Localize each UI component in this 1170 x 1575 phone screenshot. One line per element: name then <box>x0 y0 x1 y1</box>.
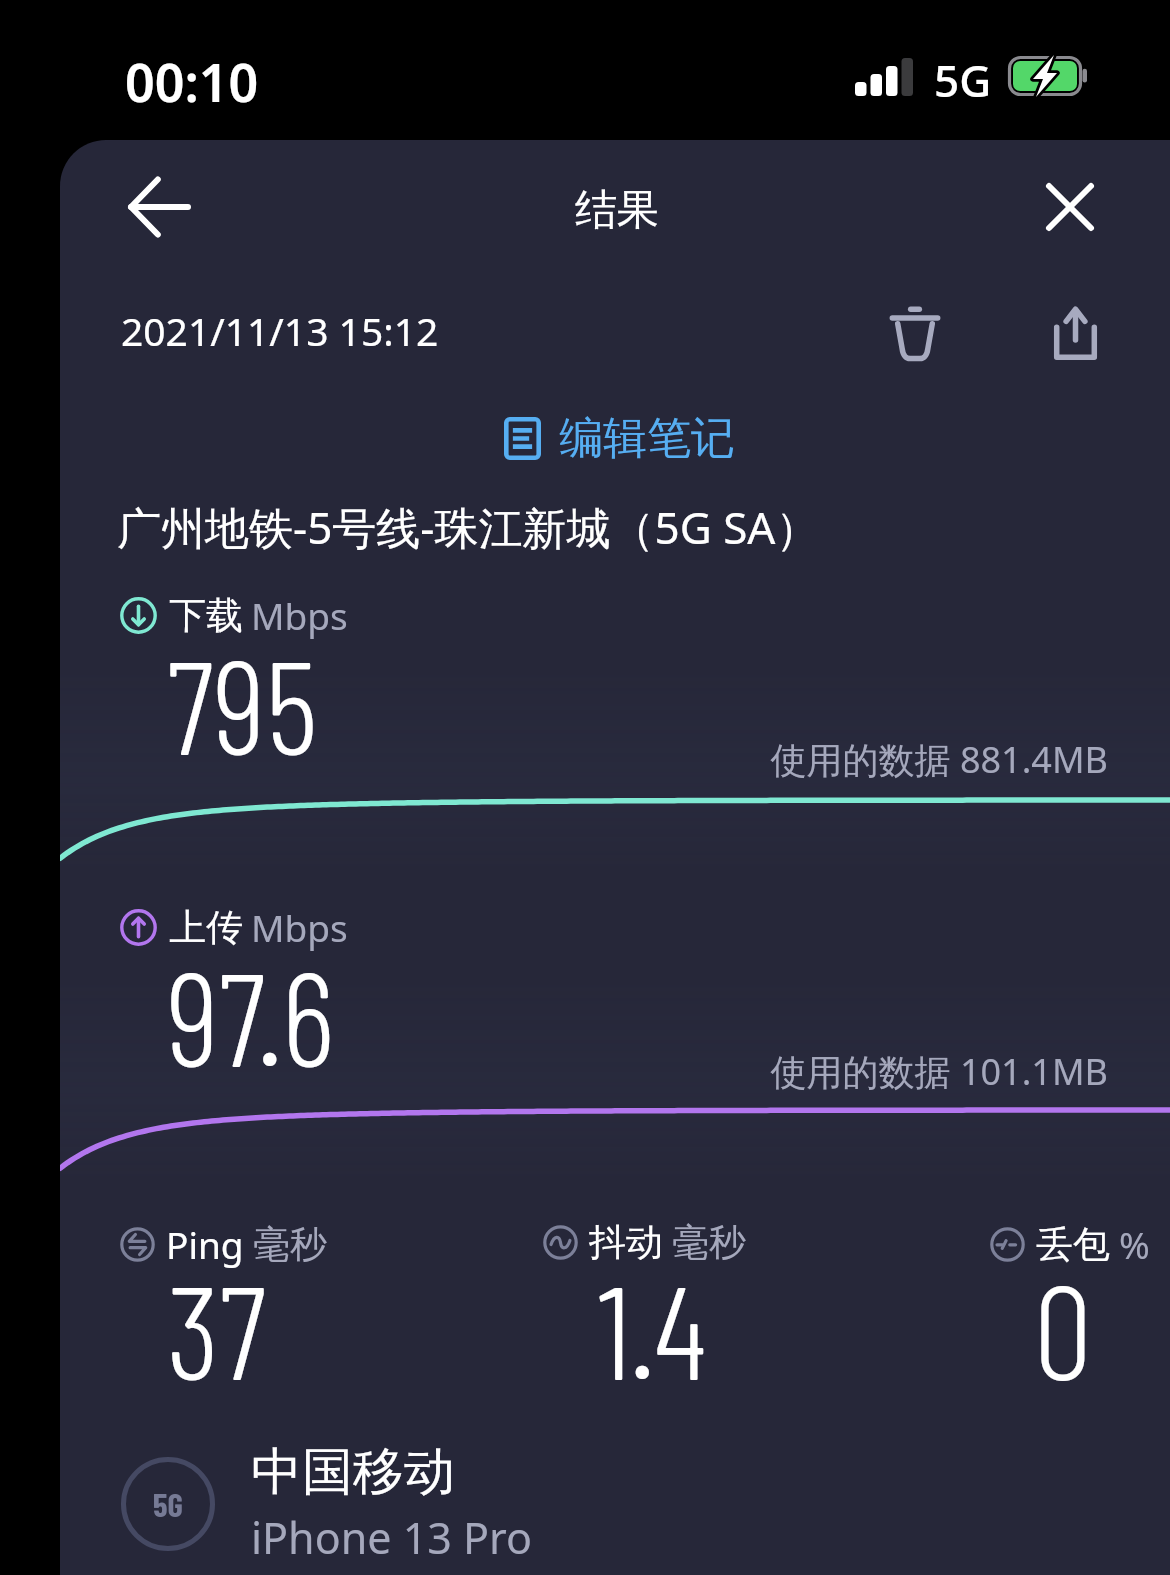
staticText: % <box>1119 1219 1150 1269</box>
staticText: 795 <box>167 624 318 781</box>
staticText: Ping <box>166 1219 244 1269</box>
button[interactable]: 编辑笔记 <box>494 401 745 476</box>
staticText: 37 <box>167 1249 267 1406</box>
staticText: 00:10 <box>125 46 259 117</box>
staticText: 抖动 <box>589 1219 663 1266</box>
button[interactable]: Ping <box>120 1219 327 1269</box>
button[interactable]: 丢包 <box>990 1219 1150 1269</box>
staticText: 下载 <box>169 592 243 639</box>
staticText: 毫秒 <box>672 1219 746 1266</box>
button[interactable]: Delete <box>860 278 970 388</box>
staticText: 1.4 <box>598 1249 707 1406</box>
staticText: 5G <box>153 1484 183 1524</box>
staticText: 编辑笔记 <box>559 411 735 466</box>
staticText: 使用的数据 881.4MB <box>60 735 1108 784</box>
staticText: 中国移动 <box>251 1440 455 1504</box>
staticText: 0 <box>1034 1249 1092 1406</box>
staticText: 2021/11/13 15:12 <box>121 304 439 357</box>
staticText: Mbps <box>251 590 348 640</box>
button[interactable]: 抖动 <box>543 1219 746 1266</box>
staticText: 97.6 <box>167 936 335 1093</box>
button[interactable]: Close <box>1015 152 1125 262</box>
staticText: 上传 <box>169 904 243 951</box>
staticText: 毫秒 <box>253 1221 327 1268</box>
staticText: 5G <box>934 50 992 110</box>
staticText: iPhone 13 Pro <box>251 1508 533 1567</box>
staticText: 结果 <box>575 184 659 237</box>
staticText: Mbps <box>251 902 348 952</box>
staticText: 广州地铁-5号线-珠江新城（5G SA） <box>117 497 820 557</box>
staticText: 使用的数据 101.1MB <box>60 1047 1108 1096</box>
button[interactable]: Back <box>104 152 214 262</box>
button[interactable]: Share <box>1020 278 1130 388</box>
staticText: 丢包 <box>1036 1221 1110 1268</box>
